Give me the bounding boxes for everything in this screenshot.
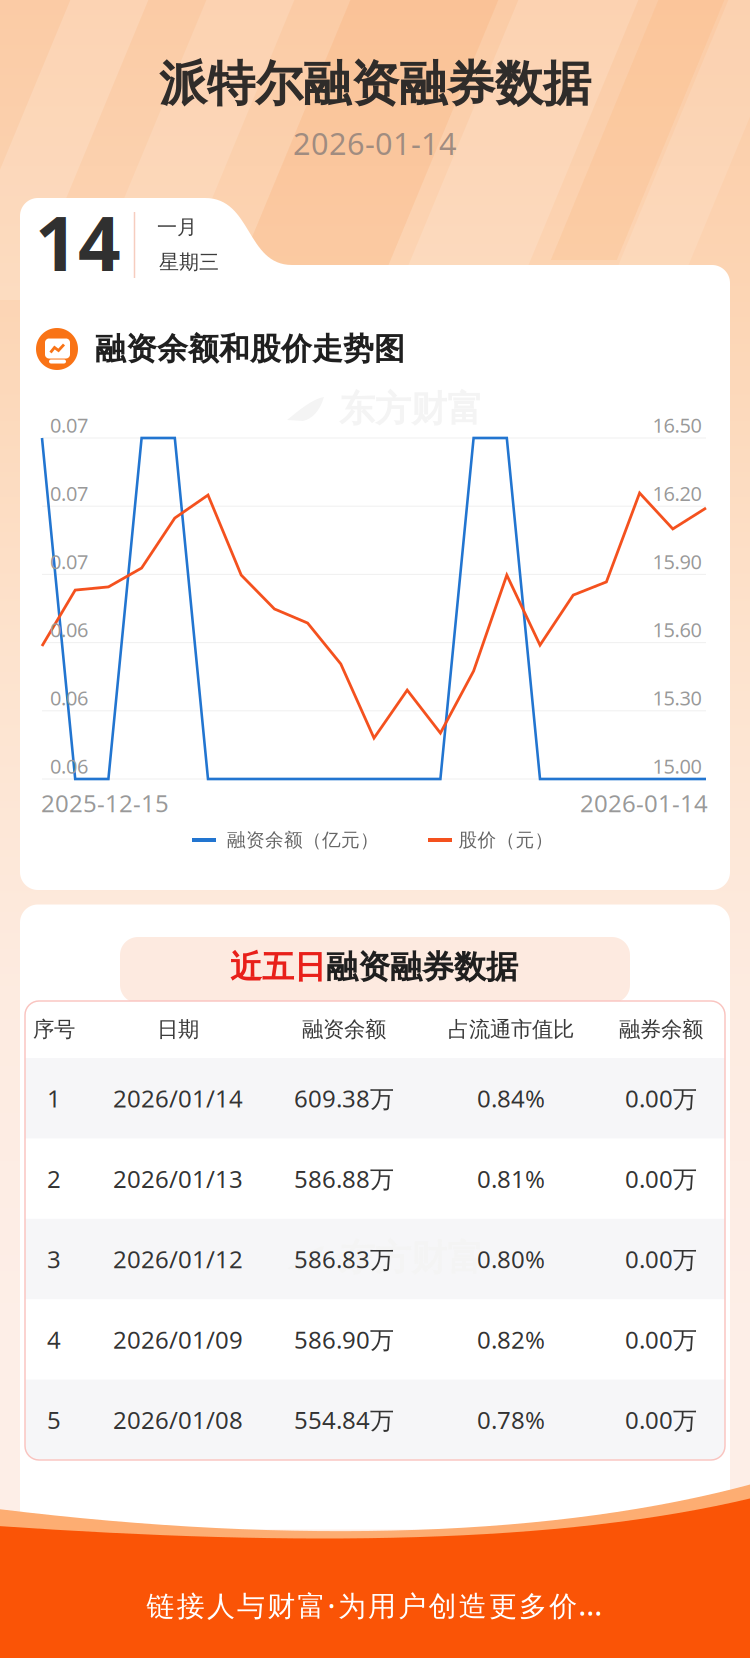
staticText: 融资余额 [302,1016,386,1043]
staticText: 2026-01-14 [580,787,708,819]
staticText: 近五日 [230,947,326,987]
staticText: 2 [47,1163,61,1195]
staticText: 3 [47,1243,61,1275]
staticText: 0.00万 [625,1082,697,1114]
staticText: 0.07 [50,548,88,575]
staticText: 融券余额 [619,1016,703,1043]
staticText: 0.84% [477,1082,545,1114]
staticText: 4 [47,1323,61,1355]
staticText: 0.00万 [625,1243,697,1275]
staticText: 星期三 [159,250,219,274]
staticText: 15.00 [652,753,701,779]
staticText: 股价（元） [458,828,553,851]
staticText: 派特尔融资融券数据 [159,54,591,113]
staticText: 0.07 [50,412,88,438]
staticText: 链接人与财富·为用户创造更多价值 [146,1586,607,1624]
staticText: 0.80% [477,1243,545,1275]
staticText: 2026/01/12 [113,1243,243,1275]
staticText: 0.06 [50,616,88,643]
staticText: 东方财富 [339,387,483,431]
staticText: 占流通市值比 [448,1016,574,1043]
staticText: 融资融券数据 [326,947,518,987]
staticText: 一月 [157,215,197,239]
staticText: 0.06 [50,684,88,711]
staticText: 2026/01/14 [113,1082,243,1114]
staticText: 16.50 [652,412,701,438]
staticText: 2026/01/13 [113,1163,243,1195]
staticText: 5 [47,1404,61,1436]
staticText: 2026/01/09 [113,1323,243,1355]
staticText: 0.82% [477,1323,545,1355]
staticText: 14 [35,192,121,292]
staticText: 1 [47,1082,61,1114]
staticText: 554.84万 [294,1404,394,1436]
staticText: 586.88万 [294,1163,394,1195]
staticText: 0.78% [477,1404,545,1436]
staticText: 609.38万 [294,1082,394,1114]
staticText: 2026-01-14 [293,123,457,163]
staticText: 0.00万 [625,1404,697,1436]
staticText: 0.06 [50,753,88,779]
staticText: 15.90 [652,548,701,575]
staticText: 2026/01/08 [113,1404,243,1436]
staticText: 586.83万 [294,1243,394,1275]
staticText: 0.81% [477,1163,545,1195]
staticText: 2025-12-15 [41,787,169,819]
staticText: 融资余额（亿元） [227,828,379,851]
staticText: 日期 [157,1016,199,1043]
staticText: 融资余额和股价走势图 [95,330,405,368]
staticText: 0.07 [50,480,88,506]
staticText: 15.30 [652,684,701,711]
staticText: 15.60 [652,616,701,643]
staticText: 0.00万 [625,1163,697,1195]
staticText: 586.90万 [294,1323,394,1355]
staticText: 0.00万 [625,1323,697,1355]
staticText: 16.20 [652,480,701,506]
staticText: 东方财富 [339,1236,483,1280]
staticText: 序号 [33,1016,75,1043]
